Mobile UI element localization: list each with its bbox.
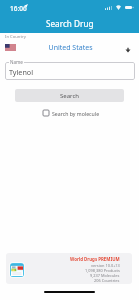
- button[interactable]: Search by molecule: [2, 109, 139, 117]
- button[interactable]: United States: [0, 43, 139, 52]
- staticText: Search: [60, 92, 79, 100]
- staticText: version 10.0+13: [91, 263, 120, 268]
- staticText: 1,098,380 Products: [85, 268, 120, 273]
- staticText: 206 Countries: [94, 278, 120, 283]
- staticText: World Drugs PREMIUM: [70, 256, 120, 262]
- button[interactable]: World Drugs app icon: [6, 253, 132, 284]
- button[interactable]: Search: [15, 89, 124, 102]
- button[interactable]: Tylenol: [5, 62, 135, 80]
- staticText: Search Drug: [46, 18, 94, 29]
- staticText: Name: [10, 59, 23, 65]
- staticText: 16:06: [10, 4, 27, 13]
- staticText: In Country: [5, 34, 26, 40]
- staticText: Tylenol: [9, 67, 34, 77]
- staticText: United States: [16, 43, 125, 52]
- other: World Drugs app icon: [10, 263, 24, 277]
- staticText: 9,237 Molecules: [90, 273, 120, 278]
- staticText: Search by molecule: [52, 110, 100, 117]
- other: Choose country: [125, 43, 131, 52]
